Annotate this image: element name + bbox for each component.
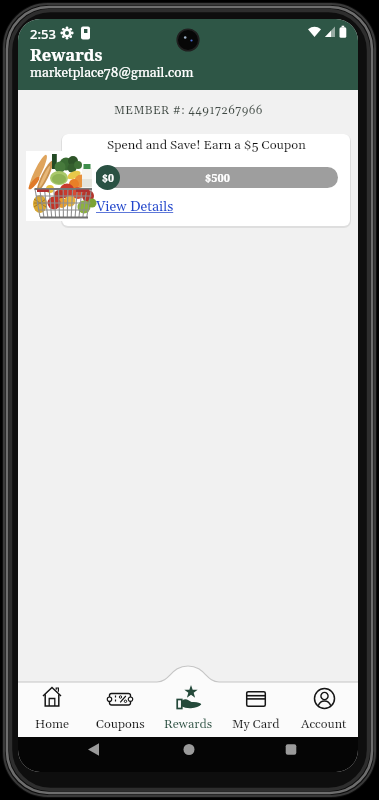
staticText: Rewards [30, 43, 103, 65]
staticText: $0 [102, 171, 114, 185]
staticText: Coupons [96, 716, 145, 732]
button[interactable] [294, 682, 354, 737]
button[interactable] [226, 682, 286, 737]
staticText: Rewards [164, 716, 213, 732]
button[interactable]: Spend and Save! Earn a $5 Coupon [62, 134, 350, 226]
button[interactable] [90, 682, 150, 737]
staticText: MEMBER #: 44917267966 [114, 103, 263, 118]
button[interactable] [22, 682, 82, 737]
staticText: Home [35, 716, 69, 732]
button[interactable] [158, 671, 218, 737]
button[interactable]: View Details [96, 198, 174, 216]
staticText: Account [301, 716, 347, 732]
staticText: marketplace78@gmail.com [30, 64, 194, 81]
staticText: My Card [232, 716, 280, 732]
staticText: Spend and Save! Earn a $5 Coupon [107, 137, 306, 153]
staticText: $500 [205, 170, 230, 185]
staticText: 2:53 [30, 25, 56, 43]
